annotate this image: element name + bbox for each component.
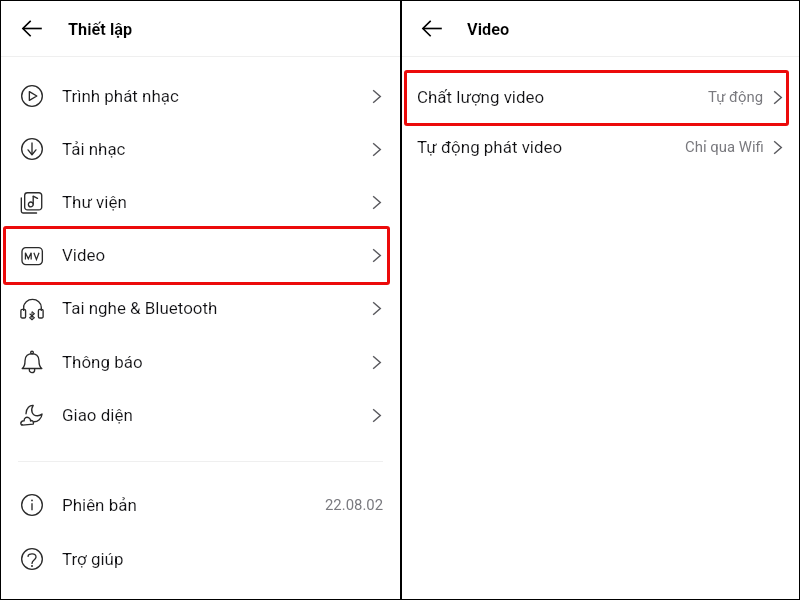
staticText: Chỉ qua Wifi [685, 138, 764, 155]
staticText: Giao diện [62, 405, 133, 425]
staticText: Chất lượng video [417, 87, 545, 107]
staticText: 22.08.02 [325, 496, 384, 513]
button[interactable]: Tự động phát video [402, 123, 799, 172]
button[interactable]: Chất lượng video [402, 73, 799, 122]
staticText: Thiết lập [68, 20, 133, 39]
button[interactable]: Tai nghe & Bluetooth [1, 282, 400, 335]
button[interactable]: Thư viện [1, 176, 400, 229]
button[interactable]: Trợ giúp [1, 533, 400, 586]
button[interactable]: Tải nhạc [1, 123, 400, 176]
staticText: Tự động [708, 88, 764, 105]
button[interactable]: Video [1, 229, 400, 282]
staticText: Trình phát nhạc [62, 86, 179, 106]
staticText: Thư viện [62, 192, 127, 212]
button[interactable]: Giao diện [1, 389, 400, 442]
staticText: Video [467, 20, 510, 39]
button[interactable]: Trình phát nhạc [1, 70, 400, 123]
staticText: Video [62, 245, 106, 265]
staticText: Phiên bản [62, 495, 137, 515]
staticText: Tai nghe & Bluetooth [62, 298, 218, 318]
staticText: Tải nhạc [62, 139, 126, 159]
button[interactable]: Back [11, 8, 53, 50]
staticText: Trợ giúp [62, 549, 124, 569]
button[interactable]: Phiên bản [1, 479, 400, 532]
button[interactable]: Back [411, 8, 453, 50]
button[interactable]: Thông báo [1, 336, 400, 389]
staticText: Tự động phát video [417, 137, 563, 157]
staticText: Thông báo [62, 352, 143, 372]
